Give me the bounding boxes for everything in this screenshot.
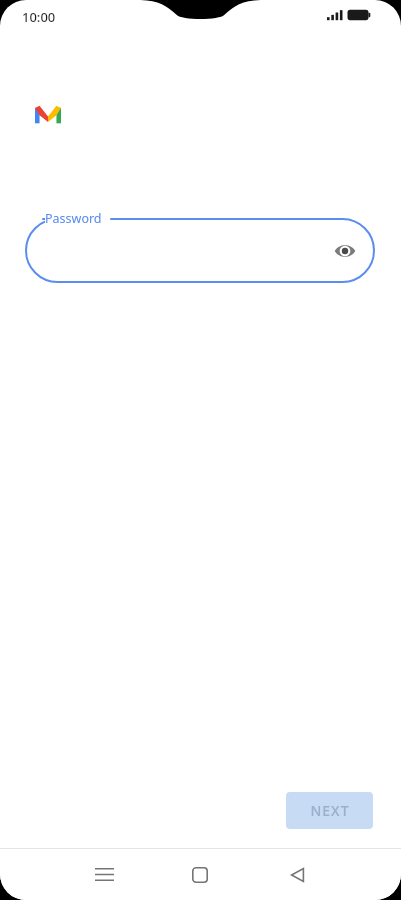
button[interactable]: Recent apps: [82, 849, 126, 900]
button[interactable]: Password: [25, 218, 375, 283]
staticText: NEXT: [310, 801, 350, 820]
staticText: Password: [45, 210, 102, 227]
staticText: 10:00: [22, 8, 56, 26]
button[interactable]: Back: [275, 849, 319, 900]
button[interactable]: NEXT: [286, 792, 373, 829]
button[interactable]: Home: [178, 849, 222, 900]
button[interactable]: Show password: [329, 235, 361, 267]
